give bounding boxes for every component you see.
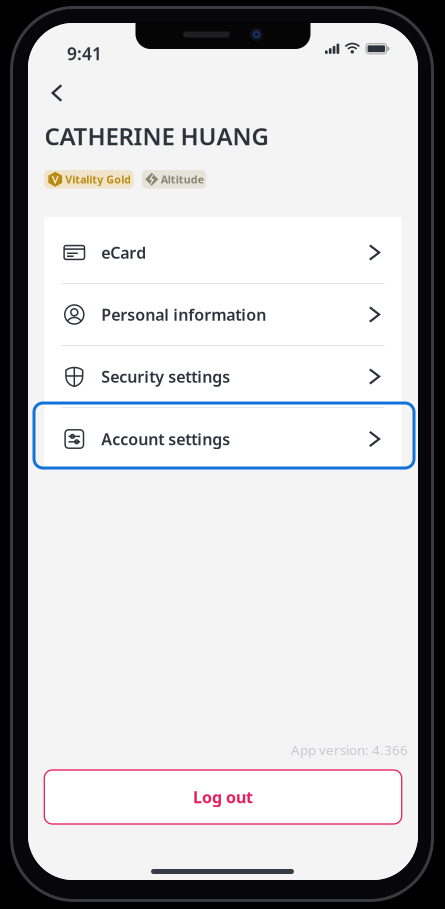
button[interactable]: Security settings	[44, 346, 402, 407]
staticText: eCard	[101, 242, 146, 263]
staticText: Account settings	[101, 428, 230, 450]
staticText: Personal information	[101, 304, 266, 325]
staticText: App version: 4.366	[291, 741, 408, 759]
button[interactable]: Back	[40, 76, 74, 110]
staticText: Vitality Gold	[65, 172, 131, 186]
staticText: Altitude	[161, 172, 204, 186]
button[interactable]: Log out	[44, 770, 402, 824]
staticText: CATHERINE HUANG	[44, 120, 268, 152]
button[interactable]: eCard	[44, 222, 402, 283]
button[interactable]: Personal information	[44, 284, 402, 345]
staticText: 9:41	[67, 42, 102, 65]
staticText: Log out	[193, 786, 253, 808]
button[interactable]: Account settings	[44, 408, 402, 470]
staticText: Security settings	[101, 366, 230, 387]
